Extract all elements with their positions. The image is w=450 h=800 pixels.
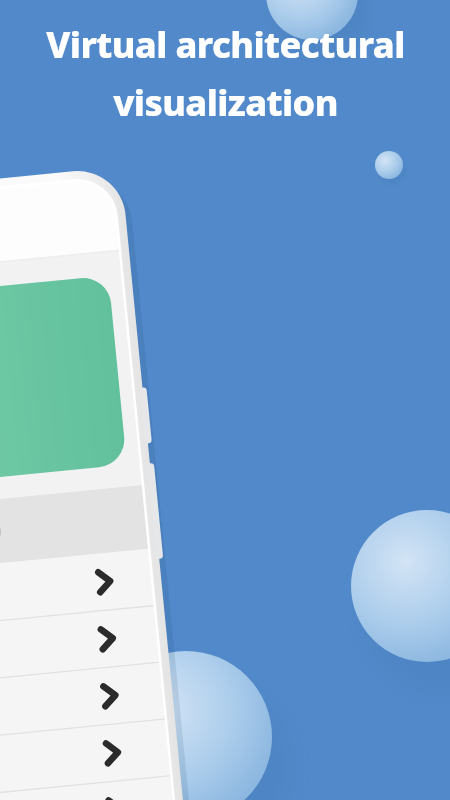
staticText: Virtual architectural bbox=[46, 20, 405, 69]
button[interactable]: App screenshot preview bbox=[0, 0, 450, 800]
staticText: visualization bbox=[113, 78, 338, 127]
